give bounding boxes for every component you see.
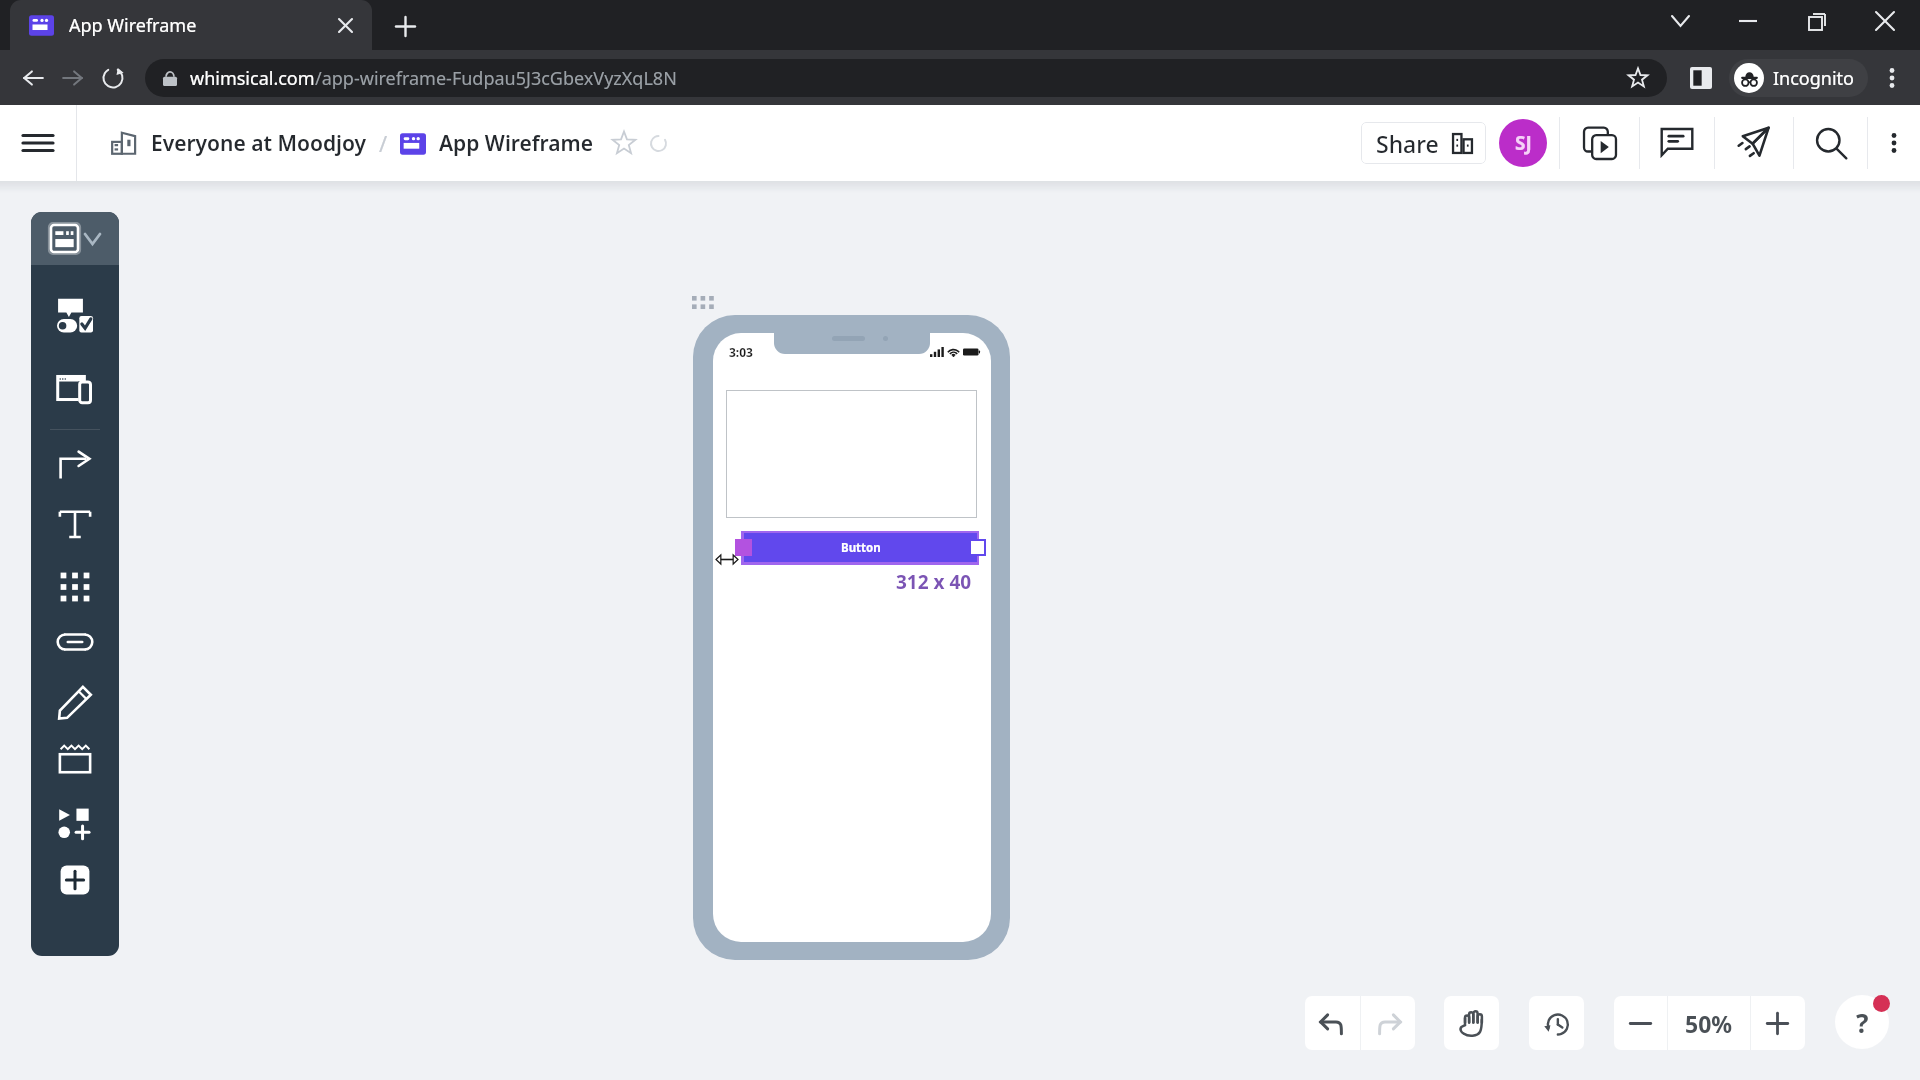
button[interactable]: Connector (47, 438, 103, 494)
staticText: Share (1376, 128, 1439, 159)
button[interactable]: Search (1794, 105, 1867, 181)
button[interactable]: Zoom in (1751, 996, 1804, 1050)
button[interactable]: Incognito (1729, 59, 1868, 97)
button[interactable]: App Wireframe (400, 129, 594, 158)
button[interactable]: Chrome menu (1872, 58, 1912, 98)
button[interactable]: Forward (53, 58, 93, 98)
staticText: Everyone at Moodjoy (151, 129, 367, 158)
staticText: ? (1856, 1005, 1869, 1040)
button[interactable]: Close window (1862, 0, 1908, 42)
button[interactable]: App Wireframe (10, 0, 372, 50)
button[interactable]: whimsical.com (145, 59, 1667, 97)
button[interactable]: Undo (1305, 996, 1360, 1050)
button[interactable]: Redo (1361, 996, 1415, 1050)
button[interactable]: Zoom out (1614, 996, 1667, 1050)
button[interactable]: Everyone at Moodjoy (110, 129, 367, 158)
button[interactable]: Text (47, 496, 103, 552)
staticText: /app-wireframe-Fudpau5J3cGbexVyzXqL8N (315, 66, 677, 91)
staticText: 50% (1685, 1008, 1733, 1039)
button[interactable]: Grid (47, 559, 103, 615)
button[interactable]: Back (13, 58, 53, 98)
button[interactable]: Minimize (1725, 0, 1771, 42)
button[interactable]: Maximize (1794, 0, 1840, 42)
button[interactable]: Draw (47, 674, 103, 730)
button[interactable]: Reload (93, 58, 133, 98)
button[interactable]: Link (47, 614, 103, 670)
button[interactable]: Share (1361, 122, 1486, 164)
button[interactable]: Devices (47, 360, 103, 416)
button[interactable]: Send (1715, 105, 1793, 181)
button[interactable]: More options (1868, 105, 1920, 181)
staticText: Button (841, 540, 881, 556)
button[interactable]: Components (47, 288, 103, 344)
button[interactable]: Side panel (1681, 58, 1721, 98)
button[interactable]: Restore version (644, 129, 672, 157)
button[interactable]: Tab search (1657, 0, 1703, 42)
staticText: 312 x 40 (896, 569, 972, 595)
staticText: SJ (1515, 130, 1532, 156)
staticText: App Wireframe (439, 129, 594, 158)
button[interactable]: 50% (1668, 996, 1750, 1050)
button[interactable]: Add (47, 852, 103, 908)
button[interactable]: Wireframe type (31, 212, 119, 265)
button[interactable]: Version history (1529, 996, 1584, 1050)
button[interactable]: New tab (389, 10, 421, 42)
button[interactable]: Bookmark (1623, 63, 1653, 93)
staticText: / (379, 128, 388, 158)
staticText: Incognito (1773, 66, 1854, 91)
button[interactable]: Frame (47, 732, 103, 788)
button[interactable]: Play (1560, 105, 1639, 181)
button[interactable]: Shapes (47, 795, 103, 851)
staticText: 3:03 (729, 344, 753, 360)
button[interactable]: SJ (1499, 119, 1547, 167)
staticText: whimsical.com (190, 66, 315, 91)
button[interactable]: Menu (0, 105, 76, 181)
button[interactable]: Help (1835, 995, 1889, 1049)
staticText: App Wireframe (69, 13, 197, 38)
button[interactable]: Pan (1444, 996, 1499, 1050)
button[interactable]: Close tab (330, 10, 360, 40)
button[interactable]: Favorite (608, 127, 640, 159)
button[interactable]: Comments (1640, 105, 1714, 181)
